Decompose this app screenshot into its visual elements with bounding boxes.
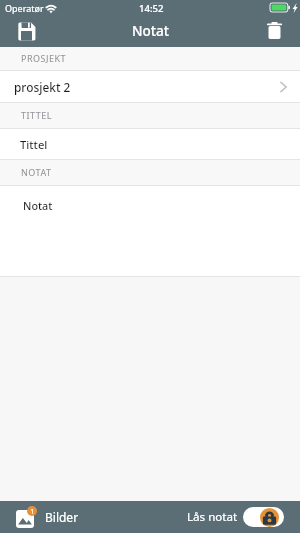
staticText: PROSJEKT [21, 52, 67, 64]
button[interactable]: 1 [16, 506, 79, 528]
button[interactable]: prosjekt 2 [0, 71, 300, 103]
button[interactable]: Tittel [0, 129, 300, 160]
button[interactable]: Lås notat [187, 507, 284, 527]
button[interactable]: Save [13, 18, 39, 44]
staticText: Tittel [20, 137, 48, 152]
button[interactable]: Delete [261, 17, 287, 43]
button[interactable]: Notat [0, 186, 300, 277]
staticText: Operatør [5, 2, 44, 14]
staticText: 1 [30, 506, 35, 516]
staticText: Lås notat [187, 509, 238, 525]
staticText: prosjekt 2 [14, 79, 71, 95]
staticText: Notat [132, 21, 170, 40]
staticText: 14:52 [139, 2, 164, 15]
staticText: TITTEL [21, 109, 52, 121]
staticText: NOTAT [21, 166, 52, 178]
staticText: Notat [23, 198, 53, 213]
staticText: Bilder [45, 509, 79, 525]
